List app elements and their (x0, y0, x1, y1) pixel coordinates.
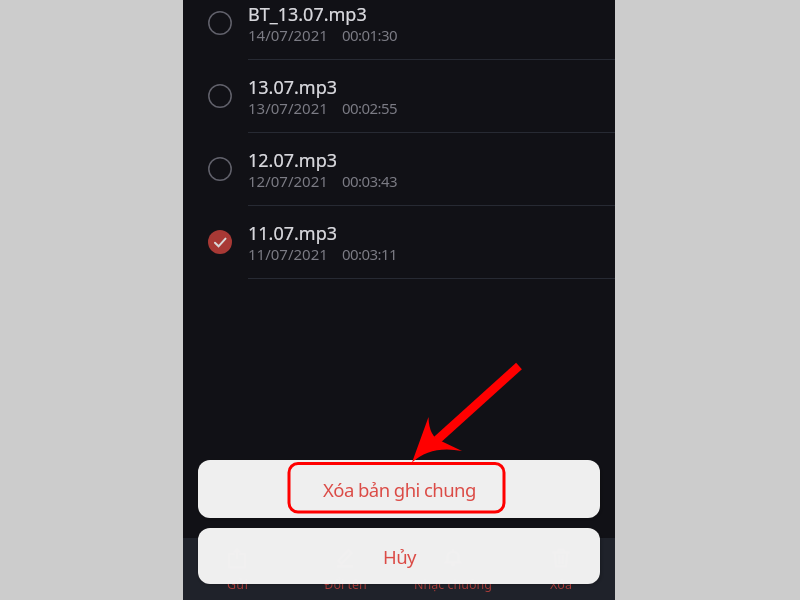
staticText: Nhạc chuông (414, 576, 492, 593)
staticText: Đổi tên (324, 576, 367, 593)
button[interactable]: Đổi tên (291, 538, 399, 600)
button[interactable]: Hủy (198, 528, 600, 584)
staticText: 13/07/2021 (248, 98, 328, 118)
staticText: 00:03:43 (342, 171, 398, 191)
staticText: 11/07/2021 (248, 244, 328, 264)
button[interactable]: BT_13.07.mp3 (183, 0, 615, 60)
staticText: 00:03:11 (342, 244, 398, 264)
button[interactable]: Xóa (507, 538, 615, 600)
staticText: 12.07.mp3 (248, 148, 338, 173)
staticText: BT_13.07.mp3 (248, 2, 367, 27)
staticText: Xóa bản ghi chung (323, 477, 476, 502)
staticText: 14/07/2021 (248, 25, 328, 45)
staticText: 00:02:55 (342, 98, 398, 118)
staticText: Xóa (550, 576, 572, 593)
button[interactable]: Nhạc chuông (399, 538, 507, 600)
staticText: Gửi (227, 576, 248, 593)
button[interactable]: 11.07.mp3 (183, 206, 615, 279)
staticText: Hủy (383, 544, 416, 569)
staticText: 12/07/2021 (248, 171, 328, 191)
button[interactable]: 12.07.mp3 (183, 133, 615, 206)
staticText: 00:01:30 (342, 25, 398, 45)
staticText: 11.07.mp3 (248, 221, 338, 246)
button[interactable]: Gửi (183, 538, 291, 600)
button[interactable]: 13.07.mp3 (183, 60, 615, 133)
staticText: 13.07.mp3 (248, 75, 338, 100)
button[interactable]: Xóa bản ghi chung (198, 460, 600, 518)
